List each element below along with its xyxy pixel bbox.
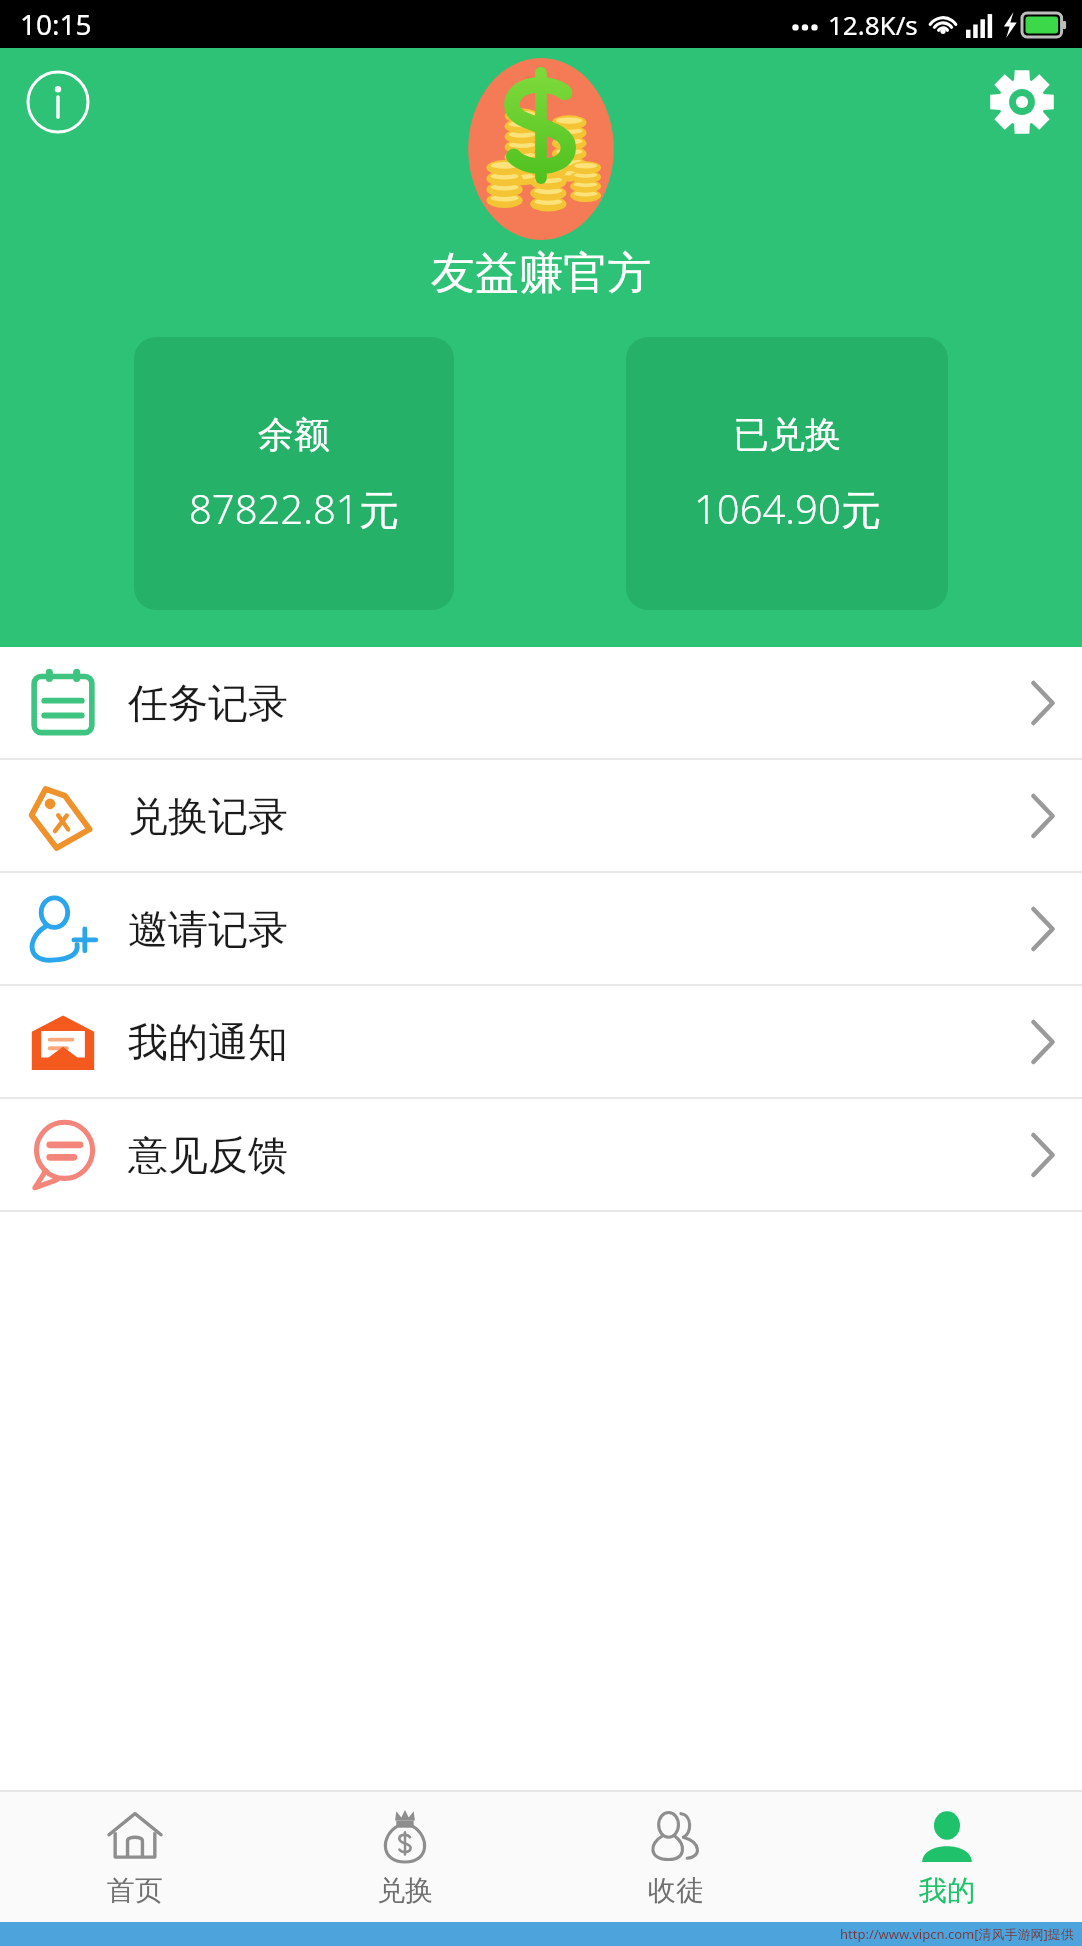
staticText: 10:15 <box>20 5 92 43</box>
button[interactable]: 已兑换 <box>626 337 948 610</box>
staticText: 邀请记录 <box>128 904 288 954</box>
button[interactable]: 首页 <box>0 1790 270 1922</box>
button[interactable]: 意见反馈 <box>0 1099 1082 1210</box>
staticText: 友益赚官方 <box>431 246 651 301</box>
staticText: http://www.vipcn.com[清风手游网]提供 <box>840 1925 1074 1943</box>
staticText: 87822.81元 <box>189 481 399 536</box>
staticText: 12.8K/s <box>828 7 918 42</box>
staticText: 我的 <box>919 1873 975 1908</box>
staticText: 已兑换 <box>733 412 841 457</box>
staticText: 兑换 <box>377 1873 433 1908</box>
button[interactable]: 邀请记录 <box>0 873 1082 984</box>
button[interactable]: 任务记录 <box>0 647 1082 758</box>
button[interactable]: 我的 <box>811 1790 1082 1922</box>
button[interactable]: Settings <box>988 68 1056 136</box>
button[interactable]: Info <box>26 70 90 134</box>
button[interactable]: 兑换 <box>270 1790 540 1922</box>
button[interactable]: 余额 <box>134 337 454 610</box>
button[interactable]: 收徒 <box>540 1790 811 1922</box>
staticText: 余额 <box>258 412 330 457</box>
staticText: 任务记录 <box>128 678 288 728</box>
staticText: 意见反馈 <box>128 1130 288 1180</box>
button[interactable]: 兑换记录 <box>0 760 1082 871</box>
staticText: 我的通知 <box>128 1017 288 1067</box>
button[interactable]: 我的通知 <box>0 986 1082 1097</box>
staticText: 首页 <box>107 1873 163 1908</box>
staticText: 1064.90元 <box>694 481 881 536</box>
staticText: 兑换记录 <box>128 791 288 841</box>
staticText: 收徒 <box>648 1873 704 1908</box>
